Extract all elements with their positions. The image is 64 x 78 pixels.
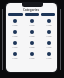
button[interactable]: Label bbox=[6, 41, 23, 49]
button[interactable]: Label bbox=[40, 52, 57, 60]
staticText: Label bbox=[12, 35, 18, 38]
button[interactable]: Label bbox=[40, 19, 57, 27]
button[interactable]: Label bbox=[6, 30, 23, 38]
button[interactable]: Label bbox=[6, 52, 23, 60]
staticText: Label bbox=[29, 57, 35, 60]
button[interactable]: Label bbox=[6, 19, 23, 27]
button[interactable]: Label bbox=[23, 19, 40, 27]
button[interactable] bbox=[8, 13, 23, 16]
staticText: Label bbox=[12, 24, 18, 27]
button[interactable]: Label bbox=[23, 30, 40, 38]
staticText: Label bbox=[46, 35, 52, 38]
button[interactable]: Label bbox=[23, 41, 40, 49]
staticText: Label bbox=[29, 24, 35, 27]
staticText: Label bbox=[46, 46, 52, 49]
staticText: Categories bbox=[23, 8, 40, 12]
button[interactable] bbox=[25, 13, 39, 16]
staticText: Label bbox=[29, 46, 35, 49]
button[interactable]: Label bbox=[23, 52, 40, 60]
staticText: Label bbox=[46, 57, 52, 60]
button[interactable] bbox=[41, 13, 55, 16]
staticText: Label bbox=[12, 46, 18, 49]
staticText: Label bbox=[46, 24, 52, 27]
staticText: Label bbox=[29, 35, 35, 38]
button[interactable]: Label bbox=[40, 41, 57, 49]
staticText: Label bbox=[12, 57, 18, 60]
button[interactable]: Label bbox=[40, 30, 57, 38]
